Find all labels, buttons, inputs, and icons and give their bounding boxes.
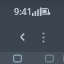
- staticText: 9:41: [14, 5, 32, 17]
- button[interactable]: Back: [12, 26, 34, 48]
- button[interactable]: Home: [0, 52, 34, 64]
- button[interactable]: More options: [34, 26, 52, 48]
- button[interactable]: Search: [34, 52, 64, 64]
